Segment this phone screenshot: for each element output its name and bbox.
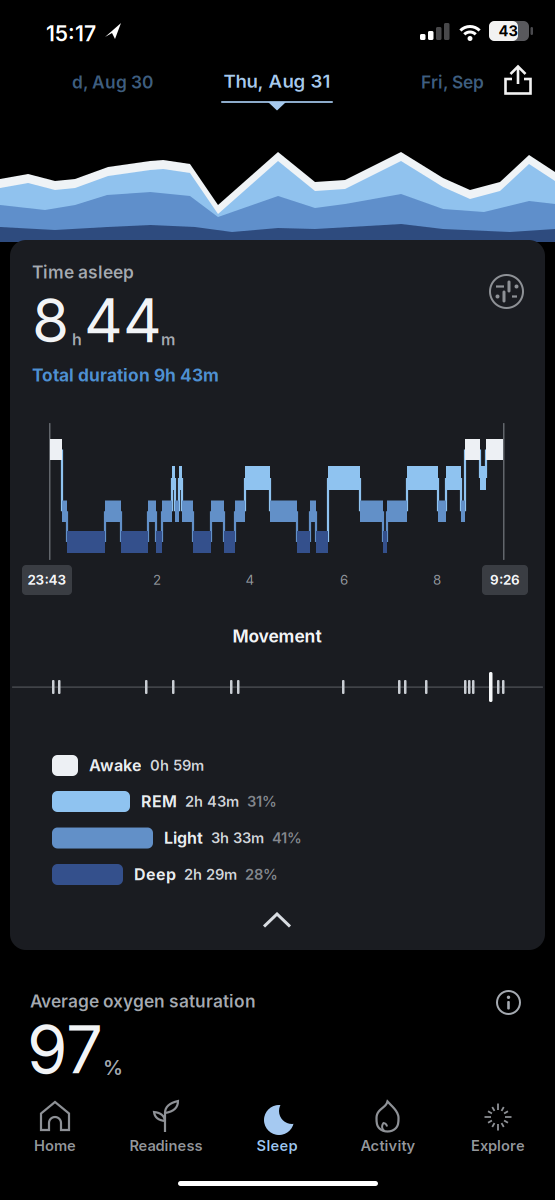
staticText: d, Aug 30 xyxy=(72,72,153,92)
staticText: REM xyxy=(141,792,177,811)
button[interactable]: Fri, Sep xyxy=(421,72,484,92)
staticText: h xyxy=(72,330,82,349)
staticText: 9:26 xyxy=(490,572,520,588)
staticText: Total duration 9h 43m xyxy=(32,365,219,385)
staticText: Readiness xyxy=(129,1137,202,1154)
button[interactable]: Info xyxy=(497,991,520,1014)
staticText: 97 xyxy=(27,1010,103,1089)
staticText: 0h 59m xyxy=(150,757,204,774)
staticText: 4 xyxy=(245,572,254,588)
staticText: Awake xyxy=(89,756,142,775)
staticText: m xyxy=(161,330,175,349)
button[interactable]: Collapse xyxy=(262,912,292,929)
staticText: % xyxy=(103,1056,123,1080)
button[interactable]: Thu, Aug 31 xyxy=(197,70,357,115)
staticText: Explore xyxy=(471,1137,525,1154)
button[interactable]: Activity xyxy=(333,1099,443,1154)
staticText: Time asleep xyxy=(32,262,134,282)
staticText: Deep xyxy=(134,865,176,884)
staticText: 3h 33m xyxy=(211,829,264,847)
staticText: 23:43 xyxy=(27,572,66,588)
staticText: 31% xyxy=(247,793,277,810)
staticText: Home xyxy=(34,1137,76,1154)
staticText: 15:17 xyxy=(46,21,96,46)
staticText: Average oxygen saturation xyxy=(30,991,256,1011)
staticText: 43 xyxy=(498,22,517,40)
button[interactable]: Readiness xyxy=(111,1099,221,1154)
button[interactable]: Home xyxy=(0,1099,110,1154)
button[interactable]: d, Aug 30 xyxy=(72,72,153,92)
staticText: Fri, Sep xyxy=(421,72,484,92)
button[interactable]: Explore xyxy=(443,1099,553,1154)
button[interactable]: Customize xyxy=(490,275,523,308)
staticText: Sleep xyxy=(256,1137,297,1154)
staticText: 8 xyxy=(433,572,441,588)
staticText: 2 xyxy=(153,572,161,588)
button[interactable]: Sleep xyxy=(222,1099,332,1154)
staticText: 2h 43m xyxy=(185,793,239,810)
staticText: Light xyxy=(164,829,203,847)
staticText: Movement xyxy=(232,626,321,646)
staticText: 44 xyxy=(84,284,162,357)
staticText: Activity xyxy=(360,1137,415,1154)
staticText: 41% xyxy=(272,829,302,847)
button[interactable]: Share xyxy=(504,65,532,95)
staticText: 8 xyxy=(32,284,69,357)
staticText: 6 xyxy=(340,572,348,588)
staticText: 28% xyxy=(245,866,278,883)
staticText: Thu, Aug 31 xyxy=(223,70,330,92)
staticText: 2h 29m xyxy=(184,866,237,883)
